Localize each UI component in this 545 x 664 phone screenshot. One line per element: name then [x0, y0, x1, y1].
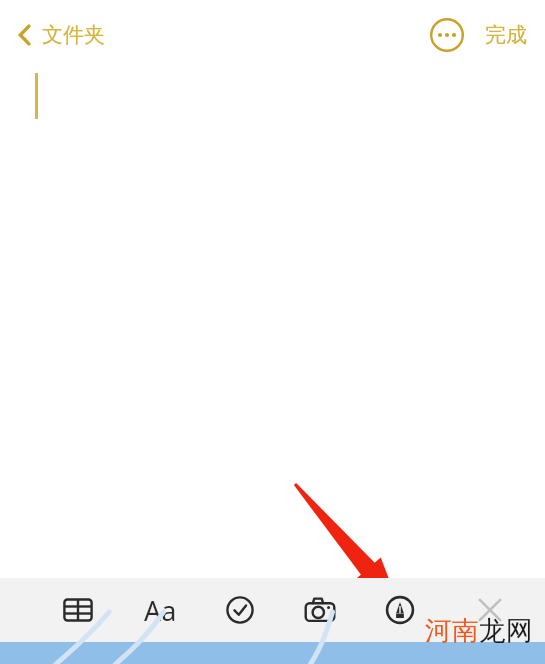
- button[interactable]: Aa: [134, 588, 186, 632]
- button[interactable]: Close: [466, 586, 514, 634]
- button[interactable]: Markup pen: [376, 586, 424, 634]
- button[interactable]: 完成: [481, 16, 531, 54]
- button[interactable]: Camera: [296, 586, 344, 634]
- button[interactable]: 文件夹: [12, 16, 109, 54]
- staticText: 河南: [425, 614, 479, 648]
- staticText: 龙网: [479, 614, 533, 648]
- staticText: 文件夹: [42, 22, 105, 48]
- button[interactable]: More options: [429, 17, 465, 53]
- button[interactable]: Insert table: [54, 586, 102, 634]
- button[interactable]: Checklist: [216, 586, 264, 634]
- staticText: Aa: [144, 592, 177, 629]
- staticText: 完成: [485, 22, 527, 48]
- button[interactable]: Text format: [136, 586, 184, 634]
